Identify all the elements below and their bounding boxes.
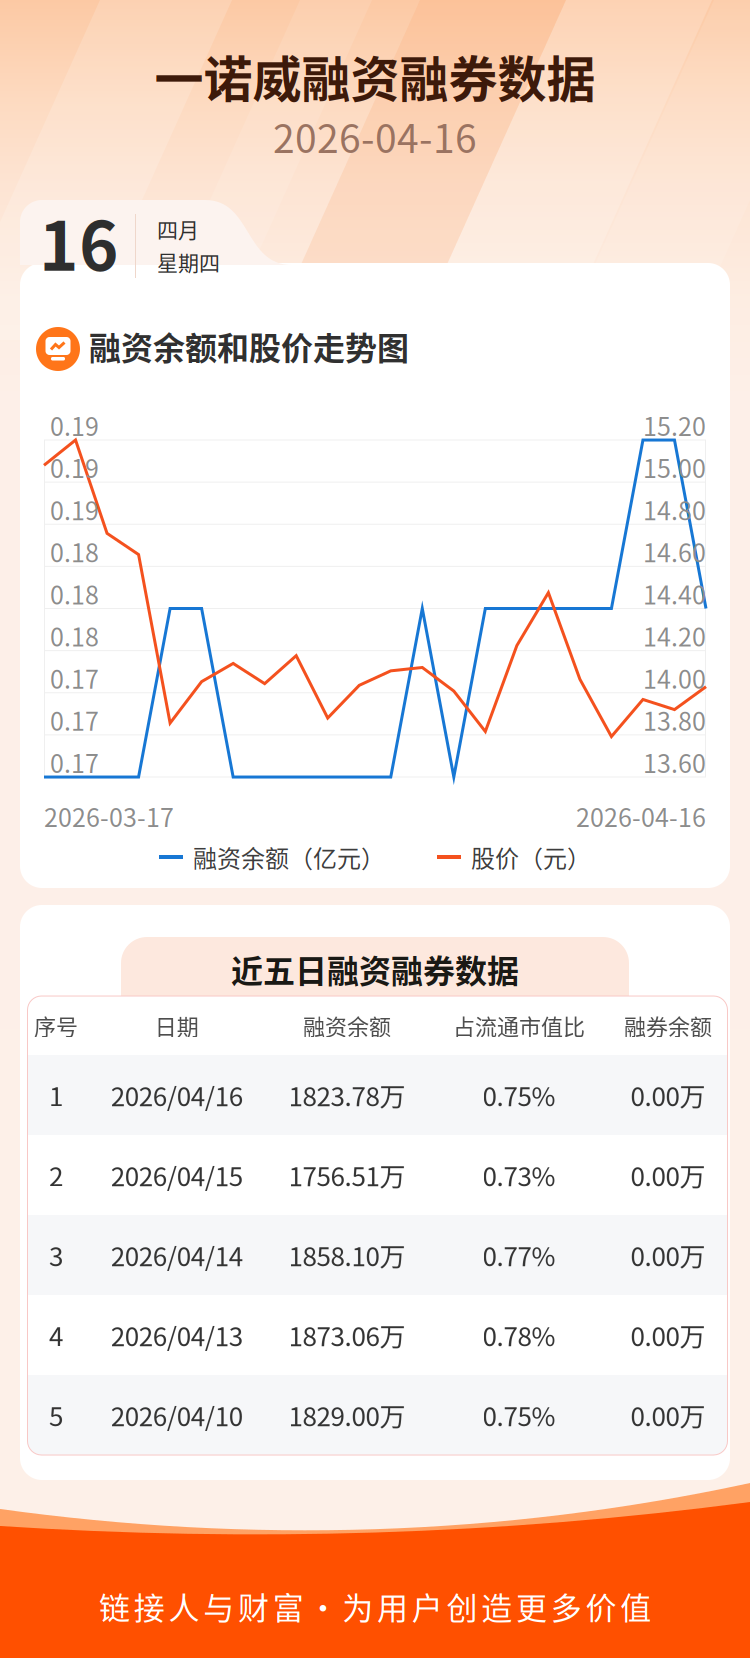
- staticText: 近五日融资融券数据: [231, 946, 519, 992]
- staticText: 0.00万: [630, 1076, 705, 1114]
- staticText: 一诺威融资融券数据: [154, 40, 595, 111]
- staticText: 14.40: [643, 575, 706, 612]
- staticText: 16: [39, 193, 119, 290]
- staticText: 0.19: [50, 491, 99, 527]
- staticText: 15.00: [643, 449, 706, 485]
- staticText: 2026-03-17: [44, 798, 174, 834]
- staticText: 13.80: [643, 702, 706, 738]
- staticText: 2026/04/16: [111, 1076, 243, 1114]
- staticText: 0.75%: [482, 1396, 555, 1434]
- staticText: 2026/04/10: [111, 1396, 243, 1434]
- staticText: 0.75%: [482, 1076, 555, 1114]
- staticText: 0.78%: [482, 1316, 555, 1354]
- staticText: 星期四: [157, 246, 220, 277]
- staticText: 1: [49, 1076, 63, 1114]
- staticText: 融资余额（亿元）: [193, 840, 385, 874]
- staticText: 14.80: [643, 491, 706, 527]
- staticText: 0.18: [50, 618, 99, 654]
- staticText: 0.17: [50, 744, 99, 780]
- staticText: 2026/04/13: [111, 1316, 243, 1354]
- staticText: 0.17: [50, 702, 99, 738]
- staticText: 14.60: [643, 533, 706, 569]
- staticText: 0.00万: [630, 1316, 705, 1354]
- staticText: 融券余额: [624, 1010, 712, 1041]
- staticText: 链接人与财富·为用户创造更多价值: [99, 1584, 651, 1628]
- staticText: 占流通市值比: [453, 1010, 585, 1041]
- staticText: 股价（元）: [471, 840, 591, 874]
- staticText: 2: [49, 1156, 63, 1194]
- staticText: 0.00万: [630, 1396, 705, 1434]
- staticText: 0.19: [50, 449, 99, 485]
- staticText: 13.60: [643, 744, 706, 780]
- staticText: 2026-04-16: [273, 108, 477, 164]
- staticText: 0.73%: [482, 1156, 555, 1194]
- staticText: 1829.00万: [288, 1396, 405, 1434]
- staticText: 融资余额: [303, 1010, 391, 1041]
- staticText: 序号: [34, 1010, 78, 1041]
- staticText: 4: [49, 1316, 63, 1354]
- staticText: 0.00万: [630, 1236, 705, 1274]
- staticText: 1823.78万: [288, 1076, 405, 1114]
- staticText: 融资余额和股价走势图: [89, 323, 409, 369]
- staticText: 3: [49, 1236, 63, 1274]
- staticText: 14.00: [643, 660, 706, 696]
- staticText: 0.19: [50, 407, 99, 443]
- staticText: 5: [49, 1396, 63, 1434]
- staticText: 1858.10万: [288, 1236, 405, 1274]
- staticText: 0.17: [50, 660, 99, 696]
- staticText: 2026-04-16: [576, 798, 706, 834]
- staticText: 2026/04/14: [111, 1236, 243, 1274]
- staticText: 1873.06万: [288, 1316, 405, 1354]
- staticText: 0.18: [50, 533, 99, 569]
- staticText: 0.18: [50, 575, 99, 612]
- staticText: 1756.51万: [288, 1156, 405, 1194]
- staticText: 15.20: [643, 407, 706, 443]
- staticText: 四月: [157, 213, 199, 244]
- staticText: 2026/04/15: [111, 1156, 243, 1194]
- staticText: 0.00万: [630, 1156, 705, 1194]
- staticText: 14.20: [643, 618, 706, 654]
- staticText: 日期: [155, 1010, 199, 1041]
- staticText: 0.77%: [482, 1236, 555, 1274]
